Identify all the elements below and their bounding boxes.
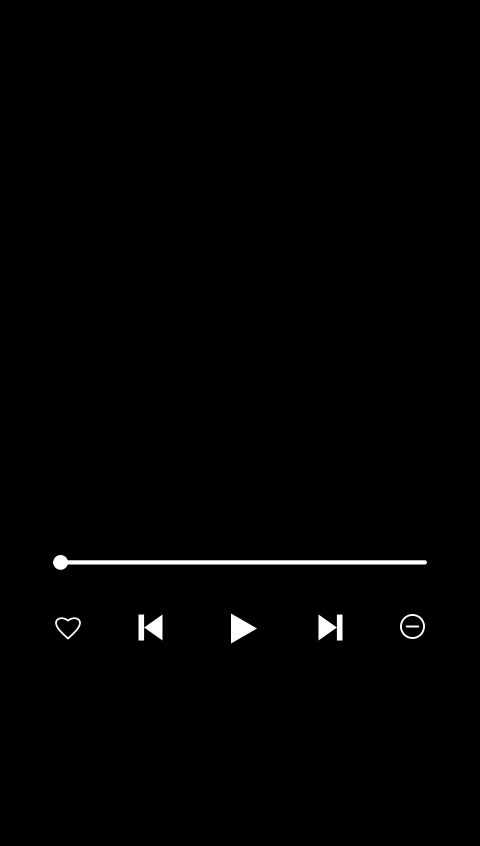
button[interactable]: Play — [213, 597, 275, 659]
button[interactable]: Next Track — [303, 600, 357, 654]
button[interactable]: Remove — [385, 599, 439, 653]
button[interactable]: Like — [41, 600, 95, 654]
button[interactable]: Previous Track — [123, 600, 177, 654]
